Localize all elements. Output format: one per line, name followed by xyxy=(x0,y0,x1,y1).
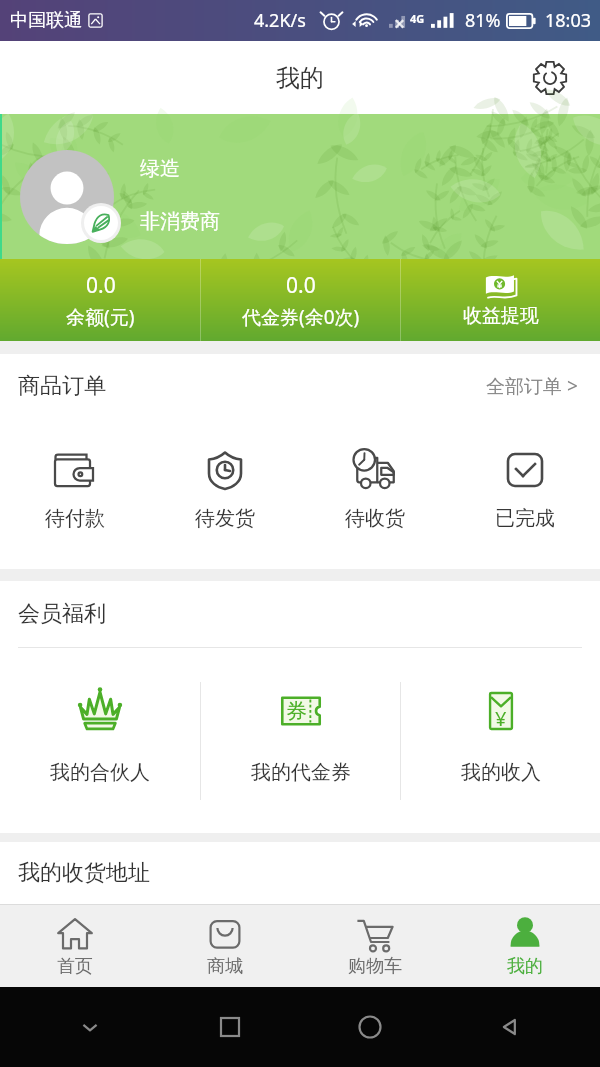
staticText: 我的收货地址 xyxy=(18,859,150,887)
other: Home xyxy=(358,1015,382,1039)
button[interactable]: 首页 xyxy=(0,905,150,987)
button[interactable]: 商城 xyxy=(150,905,300,987)
staticText: 券 xyxy=(286,698,307,724)
button[interactable]: 我的收货地址 xyxy=(0,842,600,904)
staticText: 0.0 xyxy=(286,271,316,300)
button[interactable]: ¥ xyxy=(401,648,600,833)
staticText: 已完成 xyxy=(495,506,555,531)
button[interactable]: 收益提现 xyxy=(401,259,600,341)
staticText: 收益提现 xyxy=(463,304,539,328)
other: Back xyxy=(499,1016,521,1038)
staticText: 18:03 xyxy=(545,8,592,33)
staticText: 商品订单 xyxy=(18,372,106,400)
button[interactable]: 0.0 xyxy=(0,259,200,341)
staticText: 绿造 xyxy=(140,156,180,181)
staticText: ¥ xyxy=(495,705,507,732)
staticText: 首页 xyxy=(57,955,93,978)
staticText: 4.2K/s xyxy=(254,8,306,33)
staticText: 非消费商 xyxy=(140,209,220,234)
staticText: 81% xyxy=(465,8,501,33)
staticText: 全部订单 > xyxy=(486,373,578,399)
button[interactable]: 0.0 xyxy=(201,259,400,341)
button[interactable]: 全部订单 > xyxy=(478,367,586,405)
button[interactable]: 券 xyxy=(201,648,400,833)
other: Hide xyxy=(79,1016,101,1038)
staticText: 待收货 xyxy=(345,506,405,531)
button[interactable]: 购物车 xyxy=(300,905,450,987)
button[interactable]: 已完成 xyxy=(450,417,600,569)
button[interactable]: Profile photo xyxy=(20,150,114,244)
button[interactable]: 待发货 xyxy=(150,417,300,569)
staticText: 我的 xyxy=(276,63,324,93)
staticText: 4G xyxy=(410,11,425,26)
staticText: 余额(元) xyxy=(66,304,135,330)
button[interactable]: 我的 xyxy=(450,905,600,987)
button[interactable]: 待付款 xyxy=(0,417,150,569)
staticText: 代金券(余0次) xyxy=(242,304,360,330)
staticText: 待付款 xyxy=(45,506,105,531)
button[interactable]: 待收货 xyxy=(300,417,450,569)
staticText: 中国联通 xyxy=(10,9,82,32)
staticText: 我的收入 xyxy=(461,760,541,785)
staticText: 商城 xyxy=(207,955,243,978)
staticText: 我的代金券 xyxy=(251,760,351,785)
staticText: 会员福利 xyxy=(18,600,106,628)
other: Recents xyxy=(219,1016,241,1038)
staticText: 0.0 xyxy=(86,271,116,300)
staticText: 我的 xyxy=(507,955,543,978)
button[interactable]: 我的合伙人 xyxy=(0,648,200,833)
staticText: 待发货 xyxy=(195,506,255,531)
staticText: 购物车 xyxy=(348,955,402,978)
button[interactable]: Settings xyxy=(530,58,570,98)
staticText: 我的合伙人 xyxy=(50,760,150,785)
